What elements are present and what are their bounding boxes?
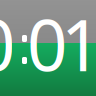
staticText: 0	[0, 0, 15, 91]
staticText: 0	[27, 0, 67, 91]
staticText: 1	[61, 0, 96, 91]
